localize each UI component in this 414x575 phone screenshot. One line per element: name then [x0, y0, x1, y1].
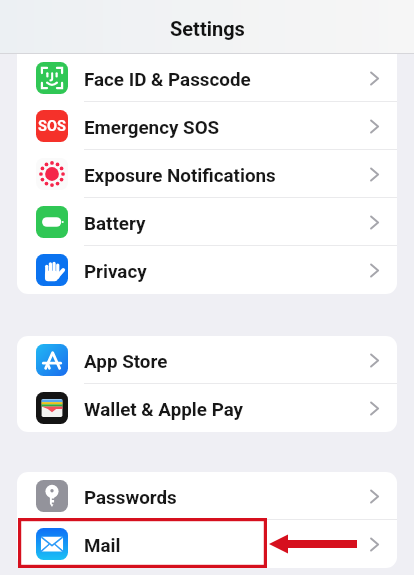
- button[interactable]: Face ID & Passcode: [17, 54, 397, 102]
- staticText: Passwords: [84, 487, 370, 509]
- button[interactable]: Battery: [17, 198, 397, 246]
- staticText: App Store: [84, 351, 370, 373]
- staticText: SOS: [38, 118, 66, 135]
- staticText: Battery: [84, 213, 370, 235]
- staticText: Emergency SOS: [84, 117, 370, 139]
- staticText: Face ID & Passcode: [84, 69, 370, 91]
- button[interactable]: Mail: [17, 520, 397, 568]
- staticText: Settings: [170, 17, 245, 40]
- button[interactable]: Exposure Notifications: [17, 150, 397, 198]
- button[interactable]: Passwords: [17, 472, 397, 520]
- button[interactable]: App Store: [17, 336, 397, 384]
- button[interactable]: Wallet & Apple Pay: [17, 384, 397, 432]
- staticText: Mail: [84, 535, 370, 557]
- staticText: Exposure Notifications: [84, 165, 370, 187]
- staticText: Privacy: [84, 261, 370, 283]
- staticText: Wallet & Apple Pay: [84, 399, 370, 421]
- button[interactable]: Privacy: [17, 246, 397, 294]
- button[interactable]: SOS: [17, 102, 397, 150]
